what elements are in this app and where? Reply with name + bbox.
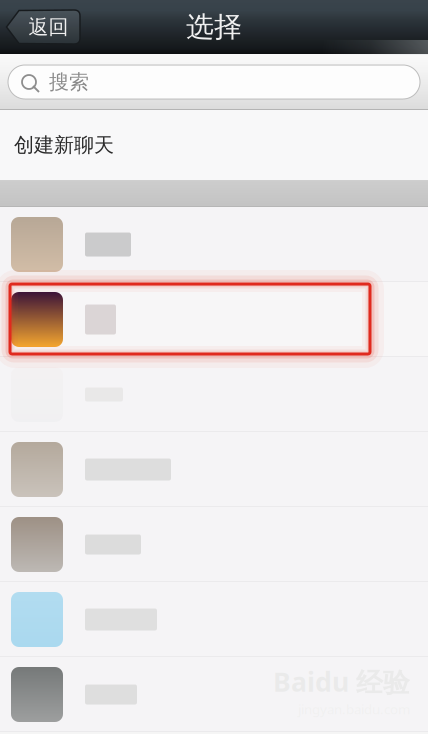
button[interactable] bbox=[0, 207, 428, 282]
staticText: 创建新聊天 bbox=[14, 133, 114, 157]
button[interactable] bbox=[0, 432, 428, 507]
staticText: Baidu 经验 bbox=[273, 664, 410, 699]
button[interactable]: 创建新聊天 bbox=[0, 110, 428, 180]
button[interactable]: 返回 bbox=[6, 10, 80, 44]
button[interactable]: 搜索 bbox=[0, 65, 428, 99]
staticText: 搜索 bbox=[49, 70, 89, 94]
button[interactable] bbox=[0, 357, 428, 432]
staticText: 选择 bbox=[186, 10, 242, 44]
button[interactable] bbox=[0, 507, 428, 582]
button[interactable] bbox=[0, 582, 428, 657]
button[interactable] bbox=[0, 282, 428, 357]
staticText: 返回 bbox=[28, 15, 68, 39]
button[interactable] bbox=[0, 657, 428, 732]
